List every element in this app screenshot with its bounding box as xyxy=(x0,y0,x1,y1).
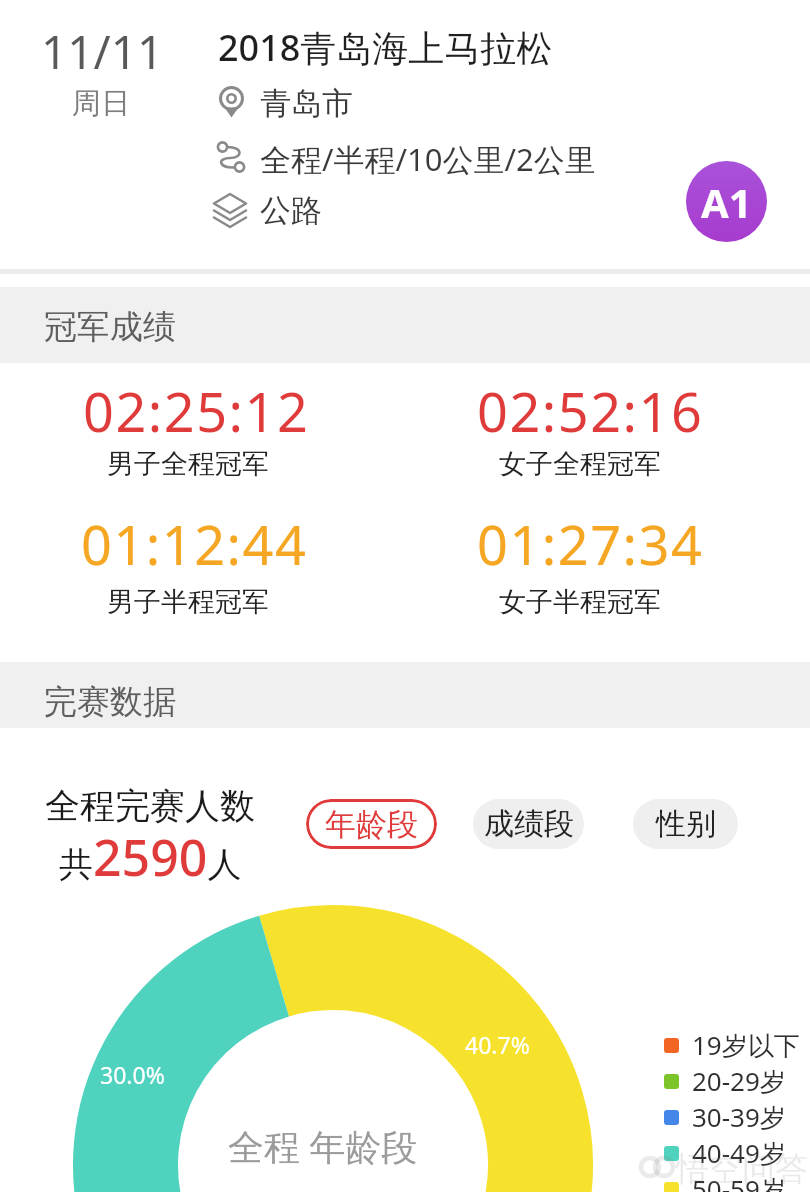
button[interactable]: 年龄段 xyxy=(306,799,437,849)
staticText: 01:27:34 xyxy=(477,507,704,581)
staticText: A1 xyxy=(701,175,752,229)
staticText: 全程完赛人数 xyxy=(45,784,255,828)
staticText: 男子半程冠军 xyxy=(107,585,269,619)
staticText: 完赛数据 xyxy=(44,681,176,723)
button[interactable]: A1 xyxy=(686,161,767,242)
staticText: 女子全程冠军 xyxy=(499,447,661,481)
staticText: 女子半程冠军 xyxy=(499,585,661,619)
staticText: 02:52:16 xyxy=(477,374,704,448)
staticText: 公路 xyxy=(260,191,322,230)
button[interactable]: 50-59岁 xyxy=(664,1171,786,1192)
staticText: 年龄段 xyxy=(325,805,418,844)
staticText: 全程/半程/10公里/2公里 xyxy=(260,138,596,180)
staticText: 30.0% xyxy=(100,1059,165,1090)
staticText: 01:12:44 xyxy=(81,507,308,581)
staticText: 周日 xyxy=(72,85,130,122)
staticText: 成绩段 xyxy=(484,805,574,843)
staticText: 冠军成绩 xyxy=(44,306,176,348)
staticText: 40-49岁 xyxy=(692,1135,786,1171)
button[interactable]: 成绩段 xyxy=(473,799,584,849)
staticText: 19岁以下 xyxy=(692,1027,800,1063)
staticText: 30-39岁 xyxy=(692,1099,786,1135)
staticText: 20-29岁 xyxy=(692,1063,786,1099)
button[interactable]: 19岁以下 xyxy=(664,1027,800,1063)
button[interactable]: 30-39岁 xyxy=(664,1099,786,1135)
staticText: 共2590人 xyxy=(59,823,242,891)
staticText: 40.7% xyxy=(465,1029,530,1060)
staticText: 02:25:12 xyxy=(83,374,310,448)
staticText: 50-59岁 xyxy=(692,1171,786,1192)
button[interactable]: 40-49岁 xyxy=(664,1135,786,1171)
staticText: 悟空问答 xyxy=(676,1148,808,1190)
staticText: 2018青岛海上马拉松 xyxy=(218,23,553,72)
staticText: 男子全程冠军 xyxy=(107,447,269,481)
button[interactable]: 20-29岁 xyxy=(664,1063,786,1099)
staticText: 青岛市 xyxy=(260,84,353,123)
staticText: 11/11 xyxy=(41,20,164,83)
button[interactable]: 性别 xyxy=(633,799,738,849)
staticText: 全程 年龄段 xyxy=(228,1122,418,1171)
staticText: 性别 xyxy=(656,805,716,843)
